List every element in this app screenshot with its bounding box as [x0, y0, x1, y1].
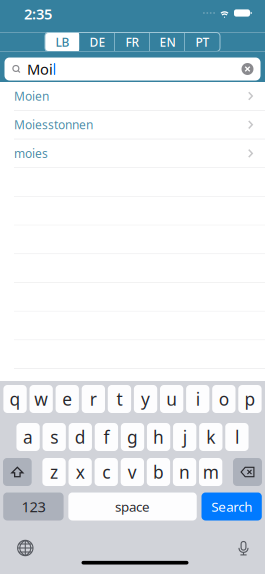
staticText: p [244, 387, 255, 410]
button[interactable]: LB [45, 32, 80, 51]
staticText: 123 [21, 497, 45, 516]
button[interactable]: Shift [3, 458, 32, 486]
staticText: 2:35 [24, 4, 52, 23]
staticText: LB [55, 34, 69, 50]
button[interactable]: g [121, 423, 144, 451]
button[interactable]: w [29, 385, 53, 413]
button[interactable]: y [134, 385, 157, 413]
button[interactable]: t [108, 385, 131, 413]
staticText: EN [159, 34, 175, 50]
staticText: y [141, 387, 150, 410]
button[interactable]: Moiesstonnen [0, 111, 265, 139]
staticText: i [196, 387, 200, 410]
staticText: w [34, 387, 48, 410]
staticText: a [23, 425, 33, 448]
staticText: Search [211, 498, 252, 515]
button[interactable]: d [69, 423, 92, 451]
button[interactable]: v [121, 458, 144, 486]
button[interactable]: u [160, 385, 183, 413]
staticText: x [76, 460, 85, 483]
button[interactable]: x [68, 458, 92, 486]
staticText: k [206, 425, 215, 448]
staticText: Moiesstonnen [14, 117, 93, 133]
staticText: e [62, 387, 72, 410]
staticText: Moi [27, 59, 53, 79]
button[interactable]: s [42, 423, 66, 451]
button[interactable]: Search [201, 492, 262, 520]
button[interactable]: Moien [0, 82, 265, 111]
button[interactable]: o [212, 385, 235, 413]
staticText: n [179, 460, 190, 483]
staticText: r [90, 387, 97, 410]
button[interactable]: j [173, 423, 196, 451]
button[interactable]: q [3, 385, 27, 413]
staticText: PT [195, 34, 209, 50]
button[interactable]: DE [80, 32, 115, 51]
button[interactable]: 123 [3, 492, 64, 520]
staticText: moies [14, 145, 48, 161]
button[interactable]: n [173, 458, 196, 486]
button[interactable]: b [147, 458, 170, 486]
staticText: d [75, 425, 86, 448]
staticText: s [50, 425, 58, 448]
staticText: space [115, 498, 150, 515]
staticText: g [127, 425, 138, 448]
button[interactable]: m [199, 458, 222, 486]
staticText: h [153, 425, 164, 448]
button[interactable]: FR [115, 32, 150, 51]
button[interactable]: EN [150, 32, 185, 51]
button[interactable]: h [147, 423, 170, 451]
button[interactable]: Dictate [236, 539, 251, 556]
staticText: Moien [14, 88, 49, 104]
button[interactable]: f [95, 423, 118, 451]
button[interactable]: PT [185, 32, 220, 51]
button[interactable]: r [82, 385, 105, 413]
button[interactable]: moies [0, 139, 265, 168]
button[interactable]: p [238, 385, 262, 413]
button[interactable]: z [42, 458, 66, 486]
staticText: FR [125, 34, 139, 50]
staticText: j [183, 425, 187, 448]
button[interactable]: e [56, 385, 79, 413]
staticText: DE [89, 34, 105, 50]
staticText: b [153, 460, 164, 483]
staticText: t [116, 387, 122, 410]
staticText: v [128, 460, 137, 483]
staticText: m [203, 460, 219, 483]
staticText: q [9, 387, 20, 410]
button[interactable]: space [68, 492, 197, 520]
button[interactable]: i [186, 385, 209, 413]
staticText: l [235, 425, 239, 448]
button[interactable]: Next keyboard [17, 540, 34, 556]
button[interactable]: a [16, 423, 40, 451]
staticText: z [50, 460, 58, 483]
staticText: u [166, 387, 177, 410]
staticText: o [219, 387, 229, 410]
button[interactable]: Clear text [241, 63, 253, 75]
button[interactable]: c [95, 458, 118, 486]
staticText: f [103, 425, 109, 448]
staticText: c [102, 460, 110, 483]
button[interactable]: k [199, 423, 222, 451]
button[interactable]: l [225, 423, 248, 451]
button[interactable]: Delete [233, 458, 262, 486]
